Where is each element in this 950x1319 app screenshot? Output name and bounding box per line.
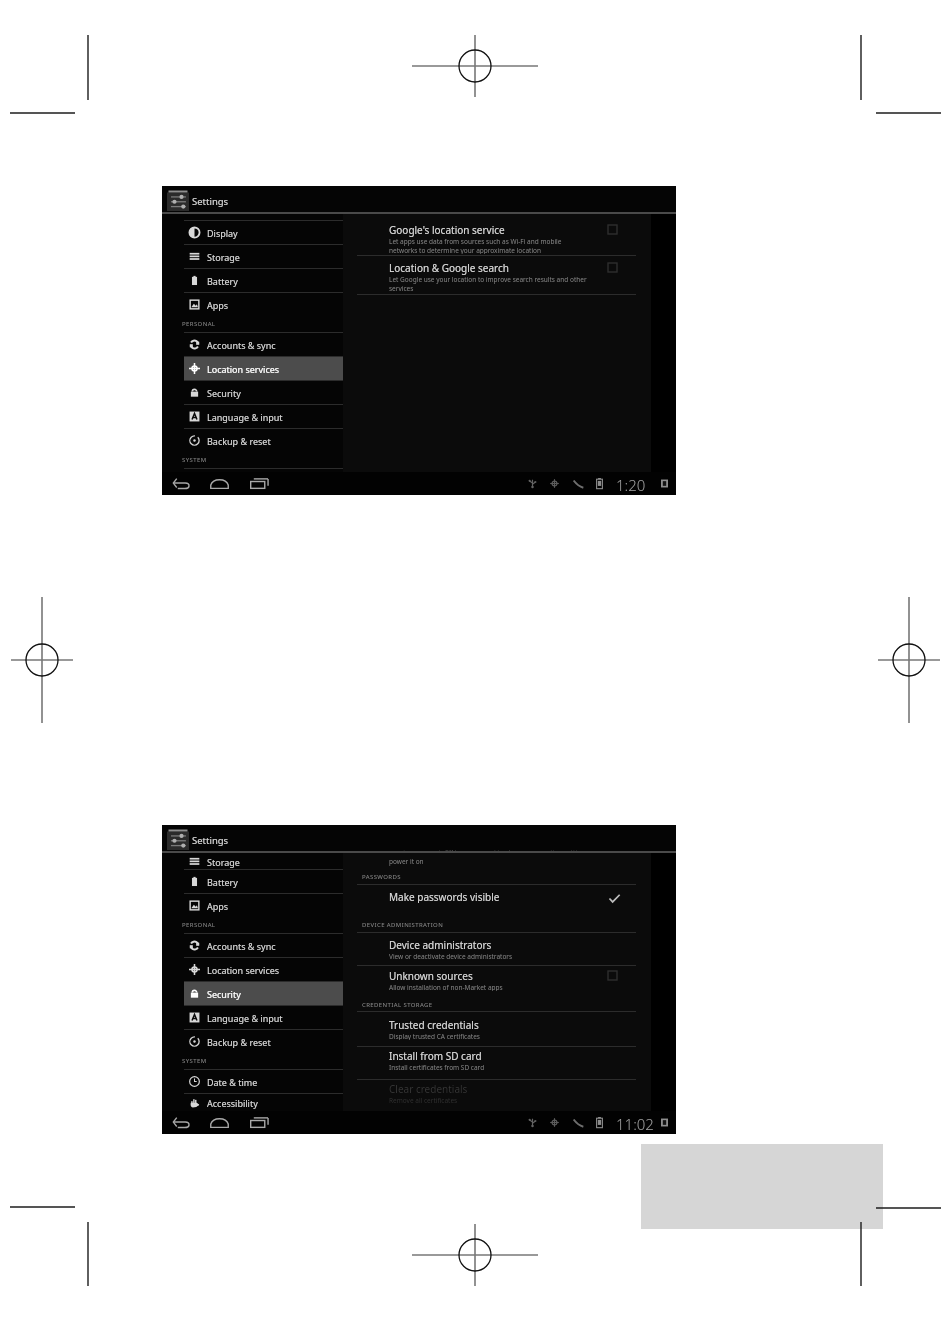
button[interactable]: Language & input	[184, 405, 343, 428]
button[interactable]: Backup & reset	[184, 429, 343, 452]
button[interactable]: Back	[170, 474, 192, 493]
staticText: Make passwords visible	[389, 890, 500, 903]
staticText: Display trusted CA certificates	[389, 1032, 480, 1040]
button[interactable]: Trusted credentials	[343, 1018, 651, 1040]
button[interactable]: Recent apps	[248, 1113, 270, 1132]
button[interactable]: Date & time	[184, 1070, 343, 1093]
staticText: Settings	[192, 834, 229, 847]
button[interactable]: Recent apps	[248, 474, 270, 493]
staticText: Storage	[207, 251, 240, 263]
button[interactable]: Home	[208, 1113, 230, 1132]
staticText: Allow installation of non-Market apps	[389, 983, 503, 991]
staticText: SYSTEM	[182, 456, 207, 464]
button[interactable]: Device administrators	[343, 938, 651, 960]
button[interactable]: Back	[170, 1113, 192, 1132]
staticText: Storage	[207, 856, 240, 868]
staticText: Apps	[207, 299, 229, 311]
staticText: CREDENTIAL STORAGE	[362, 1001, 433, 1009]
button[interactable]: Storage	[184, 245, 343, 268]
staticText: Date & time	[207, 1076, 258, 1088]
button[interactable]: Storage	[184, 853, 343, 869]
button[interactable]: Install from SD card	[343, 1049, 651, 1071]
button[interactable]: Accounts & sync	[184, 934, 343, 957]
staticText: Let apps use data from sources such as W…	[389, 237, 562, 246]
button[interactable]: Security	[184, 381, 343, 404]
button[interactable]: Apps	[184, 894, 343, 917]
staticText: PASSWORDS	[362, 873, 401, 881]
button[interactable]: Google's location service	[343, 223, 651, 254]
staticText: Battery	[207, 275, 238, 287]
staticText: Unknown sources	[389, 969, 473, 983]
staticText: Security	[207, 988, 241, 1000]
button[interactable]: Accounts & sync	[184, 333, 343, 356]
button[interactable]: Security	[184, 982, 343, 1005]
button[interactable]: Unknown sources	[343, 969, 651, 991]
button[interactable]: Accessibility	[184, 1094, 343, 1111]
staticText: Language & input	[207, 411, 283, 423]
staticText: DEVICE ADMINISTRATION	[362, 921, 444, 929]
staticText: Install from SD card	[389, 1049, 482, 1063]
button[interactable]: Display	[184, 221, 343, 244]
button[interactable]: Settings app icon	[167, 829, 189, 850]
button[interactable]: Location & Google search	[343, 261, 651, 292]
staticText: require a numeric PIN or password to cha…	[389, 848, 589, 851]
button[interactable]: Clear credentials	[343, 1082, 651, 1104]
button[interactable]: Make passwords visible	[343, 890, 651, 903]
staticText: Display	[207, 227, 238, 239]
staticText: Location services	[207, 363, 280, 375]
staticText: Backup & reset	[207, 435, 271, 447]
staticText: Remove all certificates	[389, 1096, 458, 1104]
staticText: Accessibility	[207, 1097, 258, 1109]
staticText: Accounts & sync	[207, 940, 276, 952]
button[interactable]: Battery	[184, 269, 343, 292]
staticText: PERSONAL	[182, 921, 216, 929]
button[interactable]: Settings app icon	[167, 190, 189, 211]
button[interactable]: Battery	[184, 870, 343, 893]
button[interactable]: Location services	[184, 958, 343, 981]
staticText: Battery	[207, 876, 238, 888]
staticText: Device administrators	[389, 938, 492, 952]
staticText: services	[389, 284, 414, 292]
staticText: Clear credentials	[389, 1082, 468, 1096]
button[interactable]: Home	[208, 474, 230, 493]
staticText: Google's location service	[389, 223, 505, 237]
staticText: Trusted credentials	[389, 1018, 479, 1032]
staticText: Let Google use your location to improve …	[389, 275, 587, 284]
staticText: View or deactivate device administrators	[389, 952, 513, 960]
staticText: Language & input	[207, 1012, 283, 1024]
button[interactable]: Apps	[184, 293, 343, 316]
staticText: Location & Google search	[389, 261, 509, 275]
button[interactable]: Location services	[184, 357, 343, 380]
staticText: Security	[207, 387, 241, 399]
staticText: networks to determine your approximate l…	[389, 246, 542, 254]
staticText: Apps	[207, 900, 229, 912]
staticText: power it on	[389, 857, 424, 866]
button[interactable]: Language & input	[184, 1006, 343, 1029]
button[interactable]: Backup & reset	[184, 1030, 343, 1053]
staticText: Location services	[207, 964, 280, 976]
staticText: 1:20	[616, 475, 646, 495]
staticText: PERSONAL	[182, 320, 216, 328]
staticText: Accounts & sync	[207, 339, 276, 351]
staticText: SYSTEM	[182, 1057, 207, 1065]
staticText: Install certificates from SD card	[389, 1063, 485, 1071]
staticText: Backup & reset	[207, 1036, 271, 1048]
staticText: 11:02	[616, 1114, 654, 1134]
staticText: Settings	[192, 195, 229, 208]
